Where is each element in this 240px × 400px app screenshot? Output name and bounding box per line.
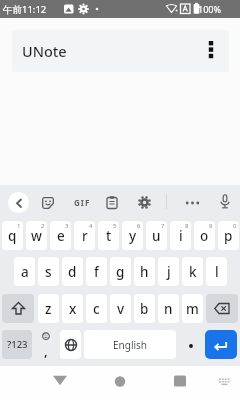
staticText: 100% — [198, 3, 221, 15]
staticText: 5 — [113, 222, 117, 230]
staticText: d — [68, 263, 77, 281]
staticText: q — [8, 227, 17, 245]
button[interactable] — [106, 196, 118, 209]
button[interactable] — [206, 294, 238, 323]
staticText: y — [129, 227, 137, 245]
button[interactable]: , — [36, 330, 56, 359]
button[interactable] — [112, 374, 128, 390]
staticText: w — [31, 227, 42, 245]
button[interactable]: t — [98, 221, 119, 250]
staticText: h — [140, 263, 149, 281]
staticText: p — [224, 227, 233, 245]
staticText: r — [82, 227, 88, 245]
staticText: c — [93, 300, 100, 318]
staticText: e — [57, 227, 65, 245]
button[interactable]: n — [158, 294, 179, 323]
staticText: a — [21, 263, 29, 281]
staticText: l — [215, 263, 219, 281]
button[interactable]: c — [86, 294, 107, 323]
button[interactable] — [52, 374, 68, 390]
staticText: 9 — [209, 222, 213, 230]
button[interactable] — [217, 375, 232, 387]
staticText: , — [44, 342, 48, 360]
staticText: g — [116, 263, 125, 281]
button[interactable]: d — [62, 257, 83, 286]
staticText: GIF — [74, 197, 91, 208]
staticText: 0 — [233, 222, 237, 230]
button[interactable]: e — [50, 221, 71, 250]
button[interactable]: y — [122, 221, 143, 250]
staticText: 午前11:12 — [3, 3, 47, 16]
button[interactable]: p — [218, 221, 239, 250]
staticText: 4 — [89, 222, 93, 230]
button[interactable]: b — [134, 294, 155, 323]
staticText: n — [164, 300, 173, 318]
button[interactable] — [205, 330, 237, 359]
staticText: m — [186, 300, 199, 318]
button[interactable] — [185, 196, 200, 209]
button[interactable] — [42, 197, 54, 209]
staticText: x — [69, 300, 77, 318]
staticText: ?123 — [7, 338, 28, 351]
button[interactable]: z — [38, 294, 59, 323]
button[interactable]: GIF — [71, 195, 94, 209]
staticText: 8 — [185, 222, 189, 230]
button[interactable]: h — [134, 257, 155, 286]
button[interactable] — [138, 196, 151, 209]
staticText: 7 — [161, 222, 165, 230]
staticText: 3 — [65, 222, 69, 230]
staticText: English — [113, 338, 148, 352]
button[interactable]: k — [182, 257, 203, 286]
button[interactable]: a — [14, 257, 35, 286]
staticText: z — [45, 300, 52, 318]
button[interactable]: v — [110, 294, 131, 323]
staticText: UNote — [22, 41, 67, 61]
button[interactable]: l — [206, 257, 227, 286]
staticText: b — [140, 300, 149, 318]
button[interactable]: o — [194, 221, 215, 250]
staticText: j — [167, 263, 171, 281]
button[interactable]: f — [86, 257, 107, 286]
staticText: 2 — [41, 222, 45, 230]
button[interactable] — [172, 374, 188, 390]
button[interactable]: q — [2, 221, 23, 250]
button[interactable]: i — [170, 221, 191, 250]
button[interactable] — [60, 330, 81, 359]
button[interactable]: x — [62, 294, 83, 323]
staticText: 6 — [137, 222, 141, 230]
staticText: o — [200, 227, 209, 245]
button[interactable]: r — [74, 221, 95, 250]
staticText: v — [117, 300, 125, 318]
button[interactable]: u — [146, 221, 167, 250]
staticText: i — [179, 227, 183, 245]
staticText: 1 — [17, 222, 21, 230]
button[interactable]: English — [84, 330, 176, 359]
staticText: k — [189, 263, 197, 281]
button[interactable] — [8, 192, 29, 213]
button[interactable]: g — [110, 257, 131, 286]
staticText: u — [152, 227, 161, 245]
button[interactable]: s — [38, 257, 59, 286]
staticText: f — [94, 263, 99, 281]
button[interactable] — [206, 40, 216, 62]
button[interactable]: w — [26, 221, 47, 250]
button[interactable]: ?123 — [2, 330, 32, 359]
button[interactable]: j — [158, 257, 179, 286]
button[interactable] — [181, 330, 201, 359]
staticText: s — [45, 263, 52, 281]
staticText: t — [106, 227, 112, 245]
button[interactable] — [2, 294, 34, 323]
button[interactable]: m — [182, 294, 203, 323]
button[interactable] — [219, 194, 231, 210]
